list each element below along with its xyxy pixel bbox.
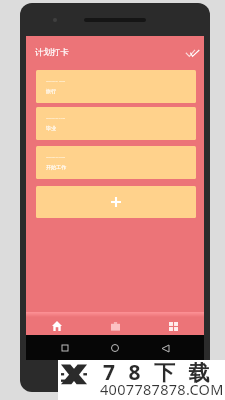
button[interactable]: Work xyxy=(88,317,143,335)
staticText: 2020-07-05 21:40 xyxy=(46,116,66,119)
button[interactable]: Back xyxy=(154,337,176,359)
staticText: 4007787878.COM xyxy=(100,379,224,399)
button[interactable]: Mark all done xyxy=(182,43,202,63)
button[interactable]: Home xyxy=(104,337,126,359)
staticText: 开始工作 xyxy=(46,164,66,170)
staticText: 2020-04-01 00:00 xyxy=(46,79,66,82)
staticText: 78下载 xyxy=(103,358,224,387)
button[interactable]: Add plan xyxy=(36,186,196,218)
button[interactable]: 2020-07-05 21:40 xyxy=(36,107,196,140)
staticText: 计划打卡 xyxy=(35,47,69,58)
button[interactable]: Home xyxy=(29,317,84,335)
staticText: 旅行 xyxy=(46,88,56,94)
button[interactable]: 2020-04-01 00:00 xyxy=(36,70,196,103)
button[interactable]: Recents xyxy=(54,337,76,359)
staticText: 2020-09-30 07:00 xyxy=(46,155,66,158)
button[interactable]: Apps xyxy=(146,317,201,335)
button[interactable]: 2020-09-30 07:00 xyxy=(36,146,196,179)
staticText: 毕业 xyxy=(46,125,56,131)
